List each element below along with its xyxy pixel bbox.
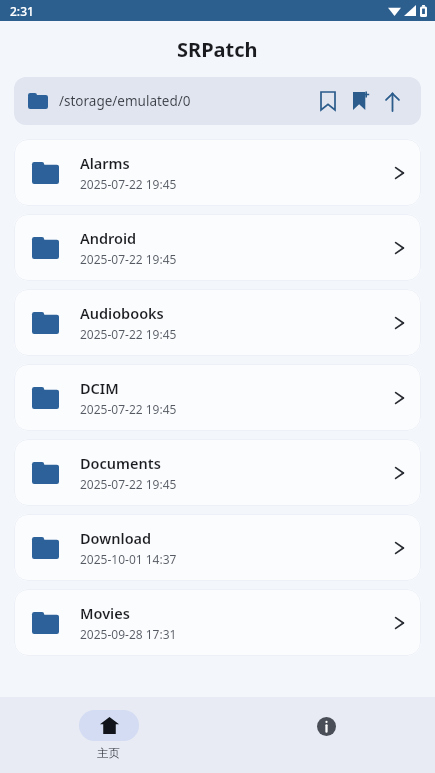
button[interactable]: Movies bbox=[14, 589, 421, 656]
button[interactable]: 主页 bbox=[0, 697, 217, 773]
staticText: 2025-07-22 19:45 bbox=[80, 176, 177, 192]
staticText: 2025-07-22 19:45 bbox=[80, 326, 177, 342]
staticText: 2025-07-22 19:45 bbox=[80, 251, 177, 267]
button[interactable]: DCIM bbox=[14, 364, 421, 431]
button[interactable]: Download bbox=[14, 514, 421, 581]
button[interactable]: Info bbox=[217, 697, 435, 773]
staticText: DCIM bbox=[80, 378, 119, 398]
staticText: Android bbox=[80, 228, 137, 248]
staticText: SRPatch bbox=[177, 36, 258, 63]
button[interactable]: /storage/emulated/0 bbox=[14, 77, 421, 125]
button[interactable]: Bookmarks bbox=[313, 86, 343, 116]
staticText: 2:31 bbox=[10, 3, 34, 19]
button[interactable]: Alarms bbox=[14, 139, 421, 206]
staticText: 2025-09-28 17:31 bbox=[80, 626, 177, 642]
staticText: 2025-07-22 19:45 bbox=[80, 401, 177, 417]
button[interactable]: Android bbox=[14, 214, 421, 281]
staticText: Alarms bbox=[80, 153, 130, 173]
button[interactable]: Add bookmark bbox=[345, 86, 375, 116]
staticText: Download bbox=[80, 528, 152, 548]
staticText: 2025-10-01 14:37 bbox=[80, 551, 177, 567]
button[interactable]: Audiobooks bbox=[14, 289, 421, 356]
button[interactable]: Up bbox=[377, 86, 407, 116]
button[interactable]: Documents bbox=[14, 439, 421, 506]
staticText: 主页 bbox=[97, 746, 120, 760]
staticText: Audiobooks bbox=[80, 303, 164, 323]
staticText: Movies bbox=[80, 603, 130, 623]
staticText: Documents bbox=[80, 453, 161, 473]
staticText: 2025-07-22 19:45 bbox=[80, 476, 177, 492]
staticText: /storage/emulated/0 bbox=[59, 92, 191, 110]
